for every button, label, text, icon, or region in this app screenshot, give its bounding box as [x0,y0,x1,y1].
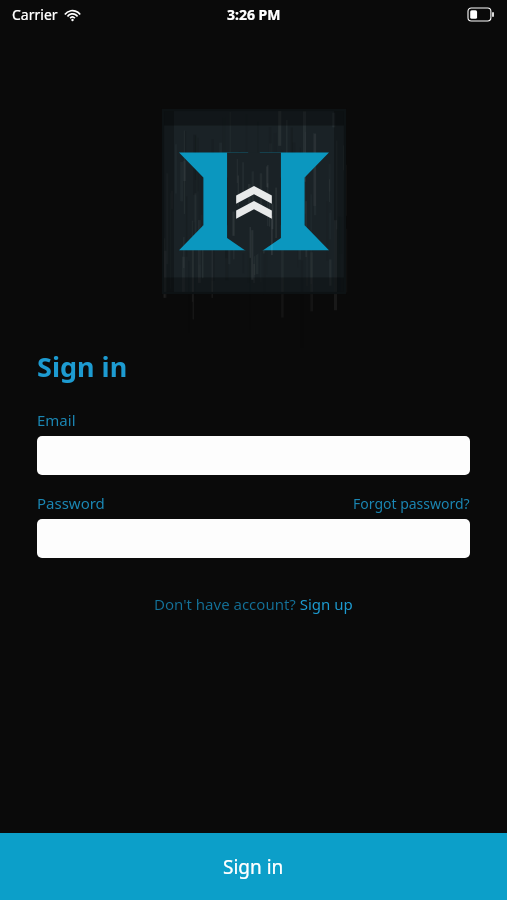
staticText: 3:26 PM [227,5,281,24]
staticText: Don't have account? Sign up [154,594,353,614]
staticText: Sign in [223,854,284,880]
button[interactable]: Sign in [0,833,507,900]
staticText: Email [37,410,76,430]
button[interactable] [37,436,470,475]
button[interactable] [37,519,470,558]
staticText: Carrier [12,5,58,24]
staticText: Forgot password? [353,494,470,513]
button[interactable]: Don't have account? Sign up [148,591,359,617]
other: Wifi signal [64,8,81,21]
button[interactable]: Forgot password? [353,494,470,513]
staticText: Sign in [37,348,128,385]
staticText: Password [37,493,105,513]
other: Battery low [468,8,494,21]
